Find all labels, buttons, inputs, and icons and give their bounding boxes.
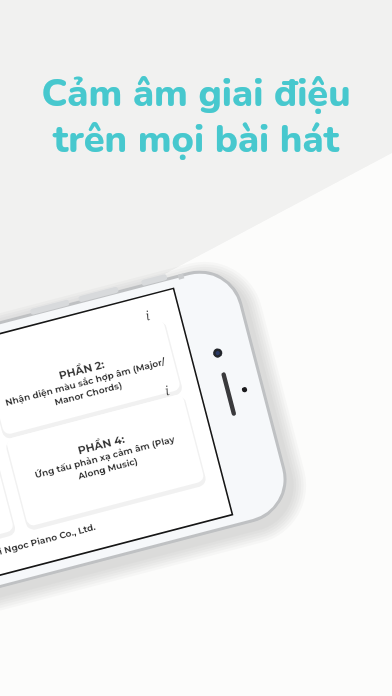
staticText: Cảm âm giai điệu trên mọi bài hát xyxy=(0,68,392,166)
